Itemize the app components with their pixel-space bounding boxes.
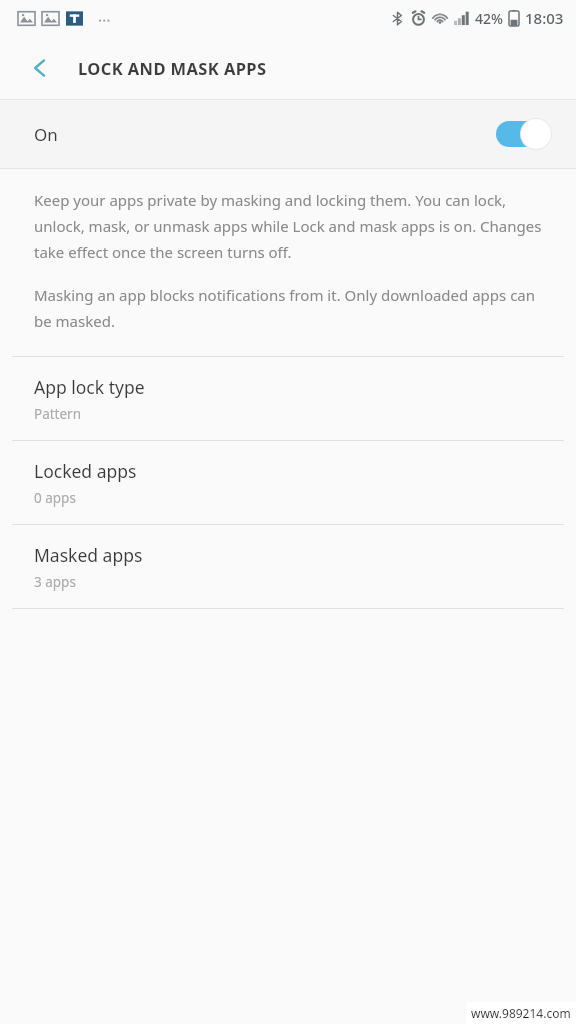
staticText: Pattern: [34, 405, 82, 423]
button[interactable]: On: [0, 100, 576, 168]
staticText: 3 apps: [34, 573, 76, 591]
staticText: 0 apps: [34, 489, 76, 507]
staticText: 18:03: [525, 8, 564, 28]
staticText: Masked apps: [34, 543, 143, 567]
staticText: 42%: [475, 9, 503, 28]
staticText: Keep your apps private by masking and lo…: [34, 190, 550, 263]
button[interactable]: Locked apps: [0, 441, 576, 524]
staticText: LOCK AND MASK APPS: [78, 57, 267, 79]
button[interactable]: Masked apps: [0, 525, 576, 608]
staticText: Masking an app blocks notifications from…: [34, 285, 550, 332]
staticText: www.989214.com: [471, 1005, 571, 1021]
staticText: On: [34, 123, 58, 146]
staticText: Locked apps: [34, 459, 137, 483]
staticText: App lock type: [34, 375, 145, 399]
button[interactable]: Back: [16, 44, 64, 92]
button[interactable]: App lock type: [0, 357, 576, 440]
